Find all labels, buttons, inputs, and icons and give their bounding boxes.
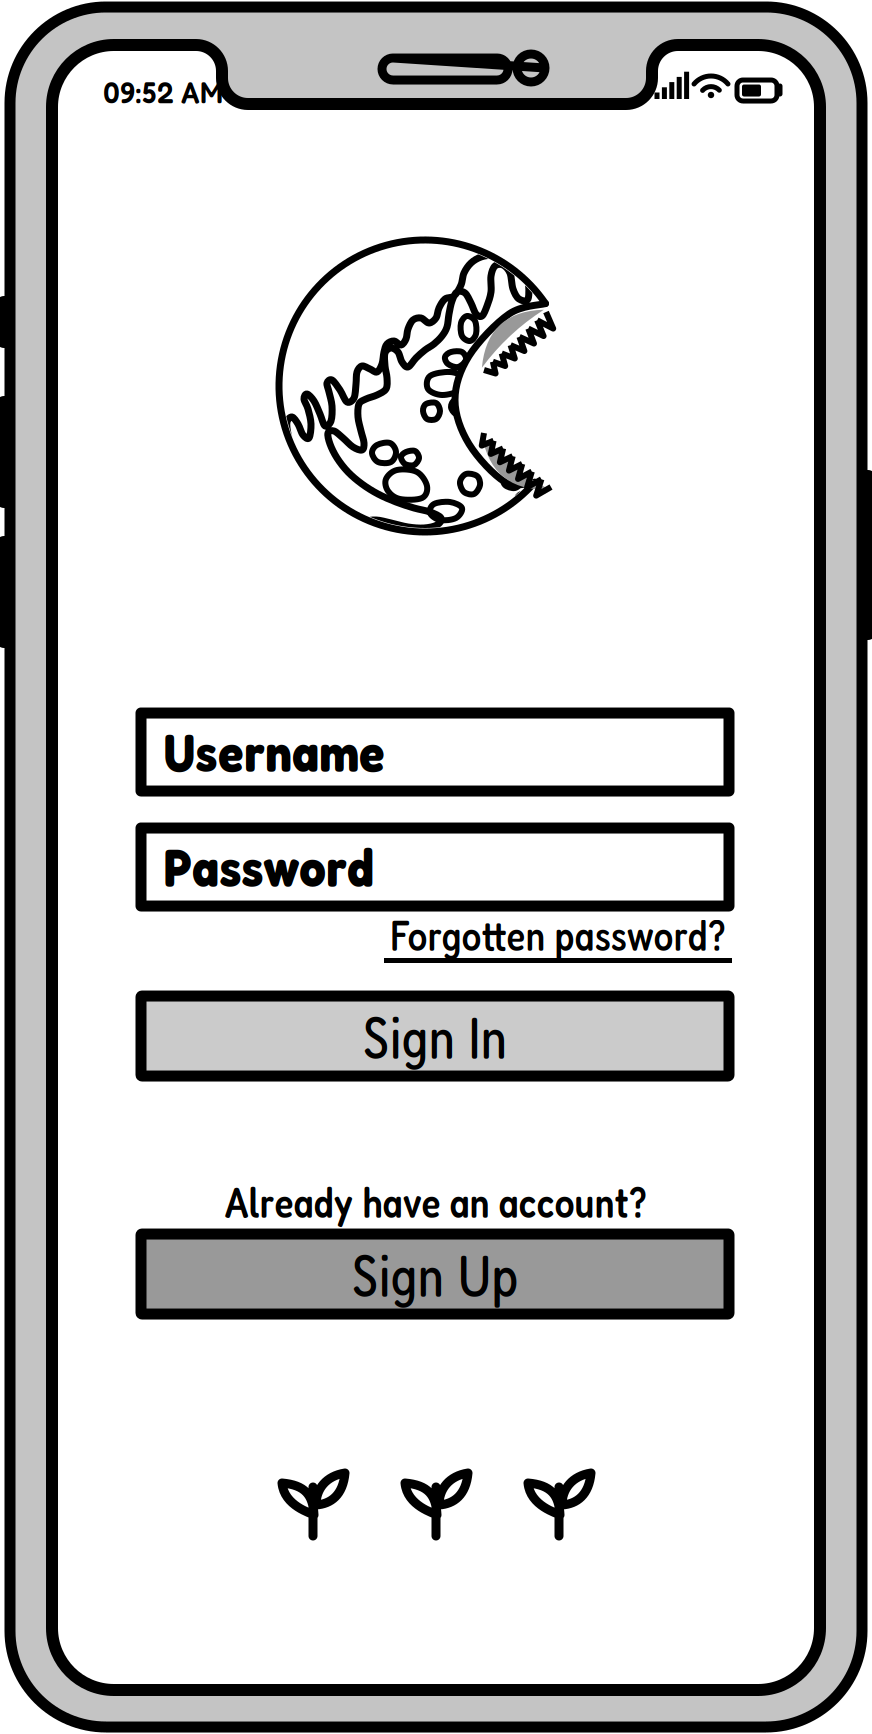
button[interactable]: Sign Up bbox=[141, 1234, 729, 1314]
staticText: Sign Up bbox=[351, 1238, 518, 1309]
staticText: Username bbox=[163, 720, 385, 784]
button[interactable]: Username bbox=[141, 713, 729, 791]
button[interactable]: Sign In bbox=[141, 996, 729, 1076]
staticText: Password bbox=[163, 835, 374, 899]
button[interactable]: Password bbox=[141, 828, 729, 906]
staticText: 09:52 AM bbox=[103, 73, 223, 110]
button[interactable]: Forgotten password? bbox=[378, 912, 738, 964]
staticText: Sign In bbox=[362, 1000, 507, 1071]
staticText: Forgotten password? bbox=[389, 909, 726, 961]
staticText: Already have an account? bbox=[224, 1176, 647, 1228]
